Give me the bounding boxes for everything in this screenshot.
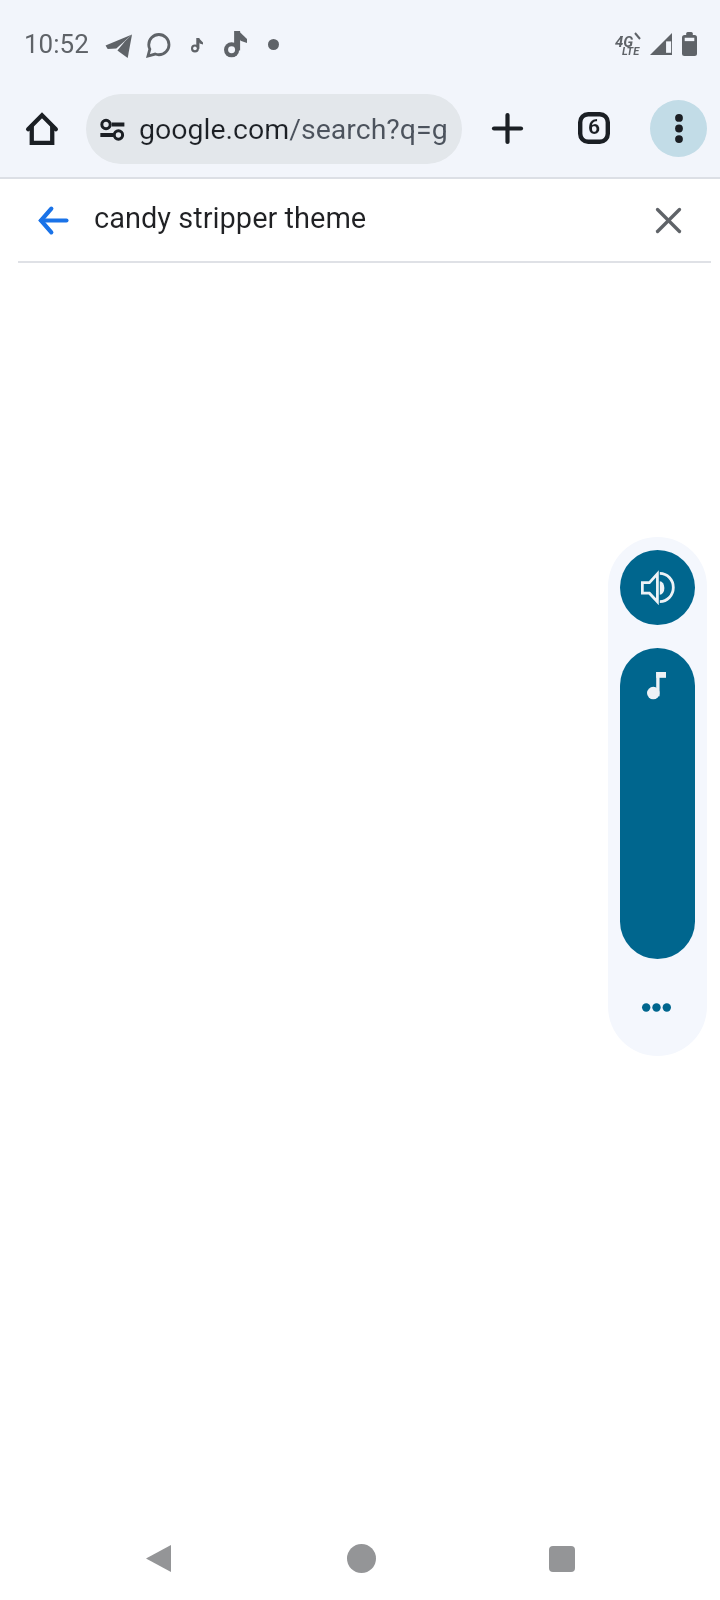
button[interactable]: Home — [329, 1526, 393, 1590]
button[interactable]: Back — [126, 1526, 190, 1590]
staticText: 6 — [588, 115, 601, 140]
button[interactable]: Volume — [620, 550, 695, 625]
button[interactable]: google.com/search?q=g — [86, 94, 462, 164]
button[interactable]: More options — [650, 100, 707, 157]
staticText: google.com/search?q=g — [139, 113, 448, 146]
button[interactable]: New tab — [475, 96, 539, 160]
staticText: 10:52 — [24, 29, 89, 59]
button[interactable]: Music — [620, 648, 695, 959]
button[interactable]: Switch tabs — [562, 96, 626, 160]
staticText: candy stripper theme — [94, 201, 367, 235]
button[interactable]: Back — [21, 188, 85, 252]
staticText: LTE — [622, 45, 640, 58]
button[interactable]: Home — [10, 97, 74, 161]
button[interactable]: Recent apps — [530, 1527, 594, 1591]
staticText: 4G — [615, 33, 634, 51]
button[interactable]: Clear search — [636, 188, 700, 252]
